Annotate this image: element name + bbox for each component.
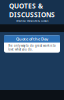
staticText: Quote of the Day: [16, 36, 48, 41]
staticText: SHARED WISDOM & IDEAS: [16, 19, 48, 23]
staticText: The only way to do great work is to love…: [8, 44, 56, 51]
staticText: QUOTES & DISCUSSIONS: [9, 1, 55, 19]
